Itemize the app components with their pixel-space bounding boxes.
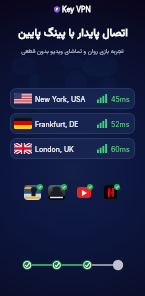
staticText: تجربه بازی روان و تماشای ویدیو بدون قطعی: [21, 47, 124, 56]
staticText: 52ms: [111, 120, 130, 128]
button[interactable]: Key VPN logo: [54, 5, 91, 13]
button[interactable]: PUBG: [24, 184, 43, 200]
staticText: Frankfurt, DE: [35, 120, 79, 128]
staticText: London, UK: [35, 145, 74, 153]
staticText: New York, USA: [35, 95, 86, 103]
staticText: Key VPN: [62, 5, 91, 13]
button[interactable]: New York, USA: [10, 88, 135, 109]
button[interactable]: Setup progress: [0, 259, 145, 271]
button[interactable]: Call of Duty: [48, 184, 67, 200]
button[interactable]: London, UK: [10, 138, 135, 159]
staticText: 60ms: [111, 145, 130, 153]
staticText: اتصال پایدار با پینگ پایین: [18, 25, 128, 42]
button[interactable]: Frankfurt, DE: [10, 113, 135, 134]
other: Key VPN logo: [54, 6, 60, 13]
button[interactable]: Netflix: [101, 184, 120, 200]
button[interactable]: YouTube: [74, 184, 93, 200]
staticText: 45ms: [111, 95, 130, 103]
